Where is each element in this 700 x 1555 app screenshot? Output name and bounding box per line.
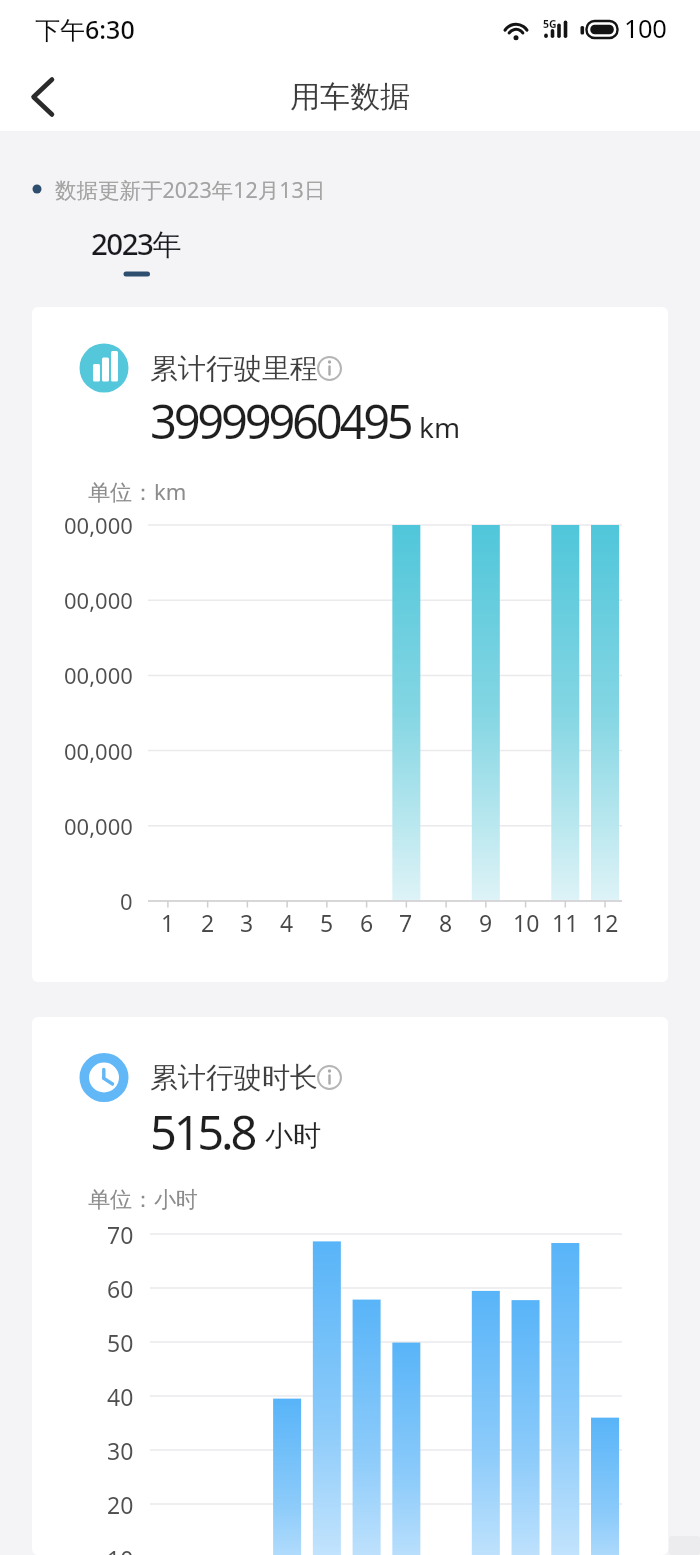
staticText: 单位：小时	[88, 1186, 198, 1214]
staticText: 2	[201, 907, 215, 937]
staticText: 8	[439, 907, 453, 937]
staticText: 0	[120, 886, 133, 916]
staticText: 3	[240, 907, 254, 937]
staticText: 累计行驶里程	[150, 351, 318, 386]
staticText: 20	[107, 1489, 134, 1519]
staticText: 60	[107, 1273, 134, 1303]
staticText: 5	[320, 907, 334, 937]
staticText: 6	[360, 907, 374, 937]
staticText: 00,000	[64, 736, 133, 766]
staticText: 100	[624, 11, 667, 46]
staticText: 5G	[543, 17, 557, 31]
staticText: 515.8	[150, 1100, 255, 1160]
staticText: 9	[479, 907, 493, 937]
button[interactable]	[18, 72, 68, 122]
staticText: 00,000	[64, 811, 133, 841]
staticText: 12	[592, 907, 619, 937]
staticText: 10	[107, 1543, 134, 1555]
staticText: 用车数据	[290, 78, 410, 116]
staticText: 下午6:30	[35, 12, 135, 46]
staticText: 2023年	[91, 223, 181, 263]
staticText: 4	[280, 907, 294, 937]
staticText: 00,000	[64, 585, 133, 615]
staticText: 小时	[265, 1118, 321, 1153]
staticText: 00,000	[64, 660, 133, 690]
staticText: 数据更新于2023年12月13日	[55, 175, 326, 204]
button[interactable]	[309, 350, 346, 387]
staticText: 30	[107, 1435, 134, 1465]
staticText: 10	[513, 907, 540, 937]
staticText: 累计行驶时长	[150, 1060, 318, 1095]
button[interactable]	[309, 1059, 346, 1096]
staticText: 00,000	[64, 510, 133, 540]
staticText: 11	[552, 907, 579, 937]
staticText: 单位：km	[88, 476, 187, 506]
staticText: 70	[107, 1219, 134, 1249]
staticText: 7	[399, 907, 413, 937]
staticText: 1	[161, 907, 175, 937]
staticText: 50	[107, 1327, 134, 1357]
staticText: km	[419, 408, 461, 446]
button[interactable]	[92, 214, 182, 276]
staticText: 40	[107, 1381, 134, 1411]
staticText: 39999960495	[150, 389, 411, 449]
